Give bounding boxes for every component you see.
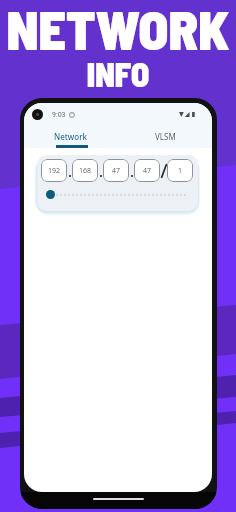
button[interactable]: 47 [134, 159, 160, 182]
staticText: 168 [79, 166, 92, 176]
staticText: 47 [112, 166, 121, 176]
staticText: 9:03 [52, 111, 66, 119]
button[interactable]: Network [24, 125, 118, 148]
button[interactable]: 168 [72, 159, 98, 182]
button[interactable]: VLSM [118, 125, 212, 148]
button[interactable]: 47 [103, 159, 129, 182]
button[interactable]: 192 [41, 159, 67, 182]
staticText: 47 [143, 166, 152, 176]
staticText: VLSM [155, 131, 176, 142]
button[interactable]: 1 [167, 159, 193, 182]
button[interactable]: Prefix length slider [46, 190, 55, 199]
staticText: 1 [178, 166, 183, 176]
staticText: INFO [0, 54, 236, 94]
staticText: 192 [48, 166, 61, 176]
button[interactable]: Home [93, 498, 144, 500]
staticText: Network [54, 131, 88, 142]
staticText: NETWORK [0, 0, 236, 61]
